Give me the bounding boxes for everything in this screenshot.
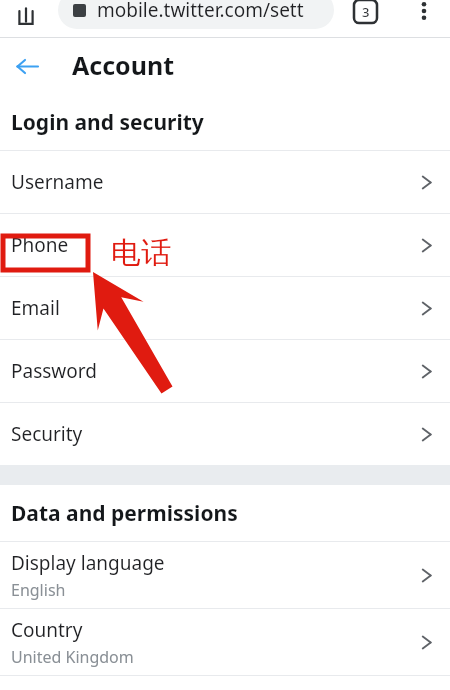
staticText: Email [11, 295, 60, 321]
staticText: Country [11, 617, 83, 643]
button[interactable]: Security [0, 403, 450, 465]
staticText: Phone [11, 232, 69, 258]
staticText: mobile.twitter.com/sett [97, 0, 304, 23]
staticText: Data and permissions [11, 499, 238, 528]
staticText: English [11, 579, 66, 601]
staticText: Security [11, 421, 83, 447]
button[interactable]: Share page [7, 0, 45, 38]
staticText: 3 [362, 3, 370, 21]
staticText: United Kingdom [11, 646, 134, 668]
button[interactable]: Back [4, 43, 50, 89]
staticText: Password [11, 358, 97, 384]
button[interactable]: Username [0, 151, 450, 213]
button[interactable]: mobile.twitter.com/sett [58, 0, 334, 29]
button[interactable]: Tabs, 3 open [345, 0, 385, 30]
staticText: Username [11, 169, 104, 195]
staticText: Login and security [11, 108, 204, 137]
staticText: 电话 [111, 234, 171, 272]
staticText: Account [72, 48, 175, 82]
staticText: Display language [11, 550, 165, 576]
button[interactable]: Display language [0, 542, 450, 608]
button[interactable]: Password [0, 340, 450, 402]
button[interactable]: Country [0, 609, 450, 675]
button[interactable]: Phone [0, 214, 450, 276]
button[interactable]: More options [404, 0, 444, 30]
button[interactable]: Email [0, 277, 450, 339]
